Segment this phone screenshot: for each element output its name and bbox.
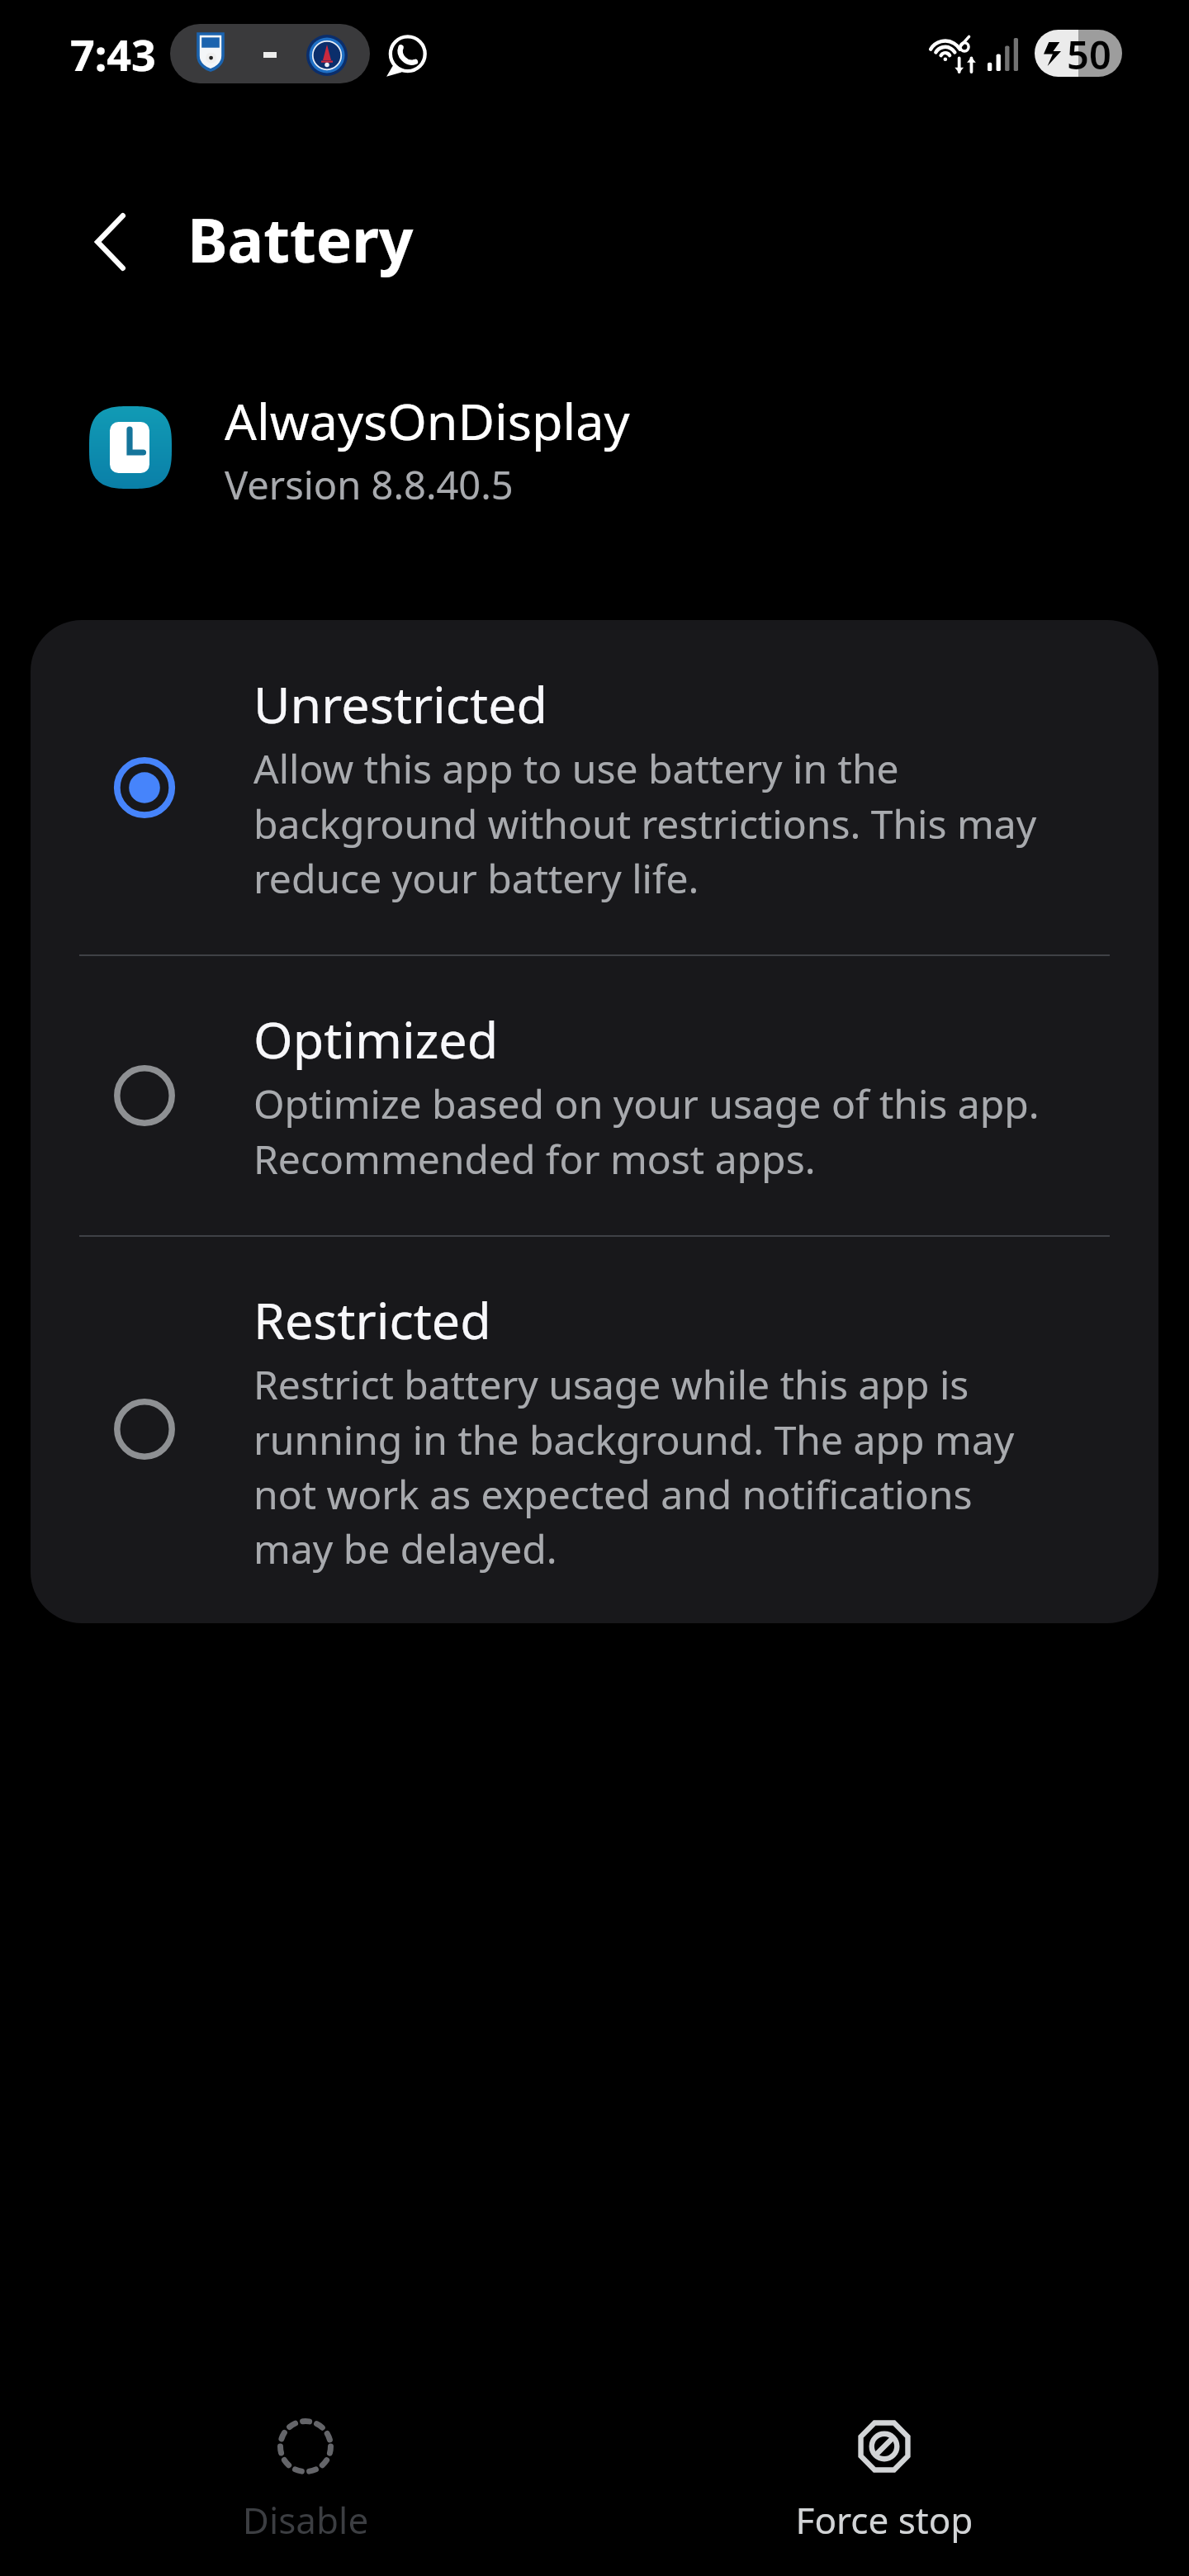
staticText: Disable (165, 2495, 446, 2545)
staticText: 50 (1067, 30, 1111, 75)
staticText: Restrict battery usage while this app is… (253, 1357, 1015, 1575)
staticText: Allow this app to use battery in the bac… (253, 741, 1037, 905)
staticText: Force stop (744, 2495, 1025, 2545)
button[interactable]: Optimized (31, 955, 1158, 1236)
button[interactable]: Unrestricted (31, 620, 1158, 955)
staticText: Restricted (253, 1286, 491, 1354)
staticText: Version 8.8.40.5 (225, 458, 514, 511)
staticText: Battery (187, 198, 414, 280)
staticText: Optimize based on your usage of this app… (253, 1077, 1040, 1186)
staticText: 7:43 (70, 25, 156, 83)
button[interactable]: Restricted (31, 1236, 1158, 1623)
staticText: Optimized (253, 1005, 499, 1073)
button[interactable]: Disable (165, 2398, 446, 2547)
button[interactable]: Force stop (744, 2398, 1025, 2547)
staticText: Unrestricted (253, 670, 548, 738)
staticText: AlwaysOnDisplay (225, 386, 630, 455)
button[interactable]: Back (64, 196, 156, 288)
